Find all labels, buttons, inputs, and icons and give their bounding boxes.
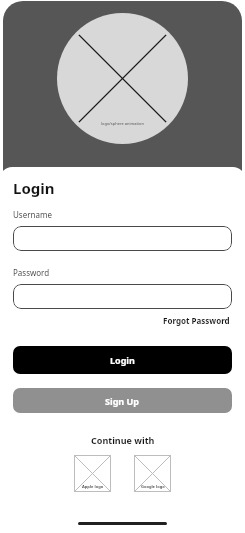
staticText: Continue with <box>91 434 155 446</box>
button[interactable]: Text input field <box>13 284 232 309</box>
button[interactable]: Text input field <box>13 226 232 251</box>
button[interactable]: Forgot Password <box>161 313 232 328</box>
staticText: Sign Up <box>105 395 140 407</box>
staticText: Forgot Password <box>163 315 230 326</box>
button[interactable]: Continue with Google <box>134 455 171 492</box>
button[interactable]: Continue with Apple <box>74 455 111 492</box>
staticText: Login <box>110 354 135 366</box>
staticText: Google logo <box>141 484 165 489</box>
staticText: Apple logo <box>82 484 104 489</box>
button[interactable]: Sign Up <box>13 388 232 413</box>
staticText: logo/sphere animation <box>101 121 144 126</box>
button[interactable]: Login <box>13 346 232 374</box>
staticText: Login <box>13 178 55 198</box>
staticText: Username <box>13 209 52 220</box>
staticText: Password <box>13 267 50 278</box>
